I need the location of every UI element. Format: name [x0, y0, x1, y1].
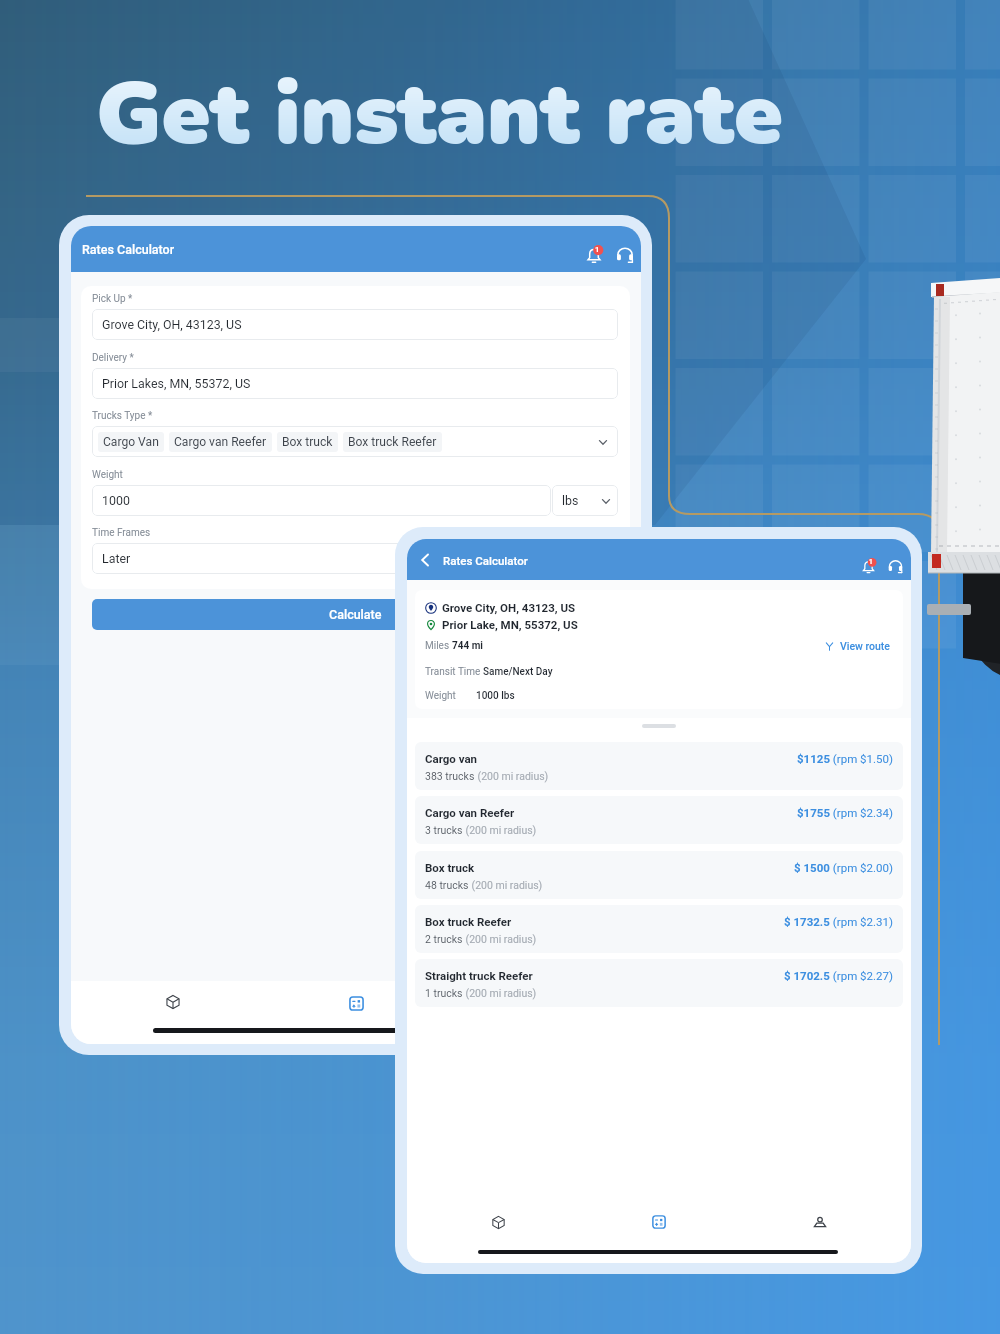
staticText: Trucks Type *	[92, 410, 153, 422]
staticText: Prior Lake, MN, 55372, US	[442, 618, 578, 631]
button[interactable]: 1000	[92, 485, 551, 516]
button[interactable]: Loads	[162, 991, 184, 1013]
button[interactable]: Calculator	[648, 1211, 670, 1233]
staticText: (200 mi radius)	[463, 824, 537, 836]
staticText: $1755	[797, 806, 830, 819]
staticText: (200 mi radius)	[463, 933, 537, 945]
staticText: Box truck	[425, 861, 475, 874]
staticText: Delivery *	[92, 352, 134, 364]
staticText: 383 trucks	[425, 770, 475, 782]
staticText: lbs	[562, 493, 579, 508]
staticText: Box truck Reefer	[348, 435, 437, 449]
staticText: Box truck Reefer	[425, 915, 512, 928]
button[interactable]: Notifications	[860, 558, 877, 575]
staticText: (200 mi radius)	[463, 987, 537, 999]
button[interactable]: Profile	[809, 1211, 831, 1233]
staticText: Weight	[92, 469, 123, 481]
button[interactable]: Notifications	[584, 245, 604, 265]
button[interactable]: Cargo van Reefer	[415, 796, 903, 844]
staticText: Calculate	[329, 607, 382, 622]
button[interactable]: Calculate	[92, 599, 619, 630]
button[interactable]: Cargo van	[415, 742, 903, 790]
staticText: 48 trucks	[425, 879, 469, 891]
button[interactable]: Straight truck Reefer	[415, 959, 903, 1007]
staticText: Time Frames	[92, 527, 151, 539]
staticText: 1 trucks	[425, 987, 463, 999]
staticText: Cargo Van	[103, 435, 159, 449]
staticText: Rates Calculator	[82, 242, 175, 257]
button[interactable]: Support	[615, 245, 635, 265]
staticText: Grove City, OH, 43123, US	[442, 601, 576, 614]
staticText: Box truck	[282, 435, 333, 449]
button[interactable]: Box truck Reefer	[415, 905, 903, 953]
staticText: (rpm $1.50)	[830, 752, 893, 765]
staticText: Same/Next Day	[483, 666, 553, 678]
button[interactable]: Grove City, OH, 43123, US	[92, 309, 618, 340]
staticText: (rpm $2.34)	[830, 806, 893, 819]
button[interactable]: Box truck	[415, 851, 903, 899]
staticText: View route	[840, 640, 890, 652]
staticText: 3 trucks	[425, 824, 463, 836]
staticText: 1	[595, 245, 600, 254]
staticText: Straight truck Reefer	[425, 969, 533, 982]
staticText: (rpm $2.31)	[830, 915, 893, 928]
button[interactable]: Cargo Van	[92, 426, 618, 457]
staticText: 1000	[102, 493, 130, 508]
staticText: $ 1732.5	[784, 915, 830, 928]
button[interactable]: Profile	[527, 992, 549, 1014]
staticText: $ 1500	[794, 861, 830, 874]
staticText: Grove City, OH, 43123, US	[102, 317, 242, 332]
staticText: Pick Up *	[92, 293, 133, 305]
staticText: 1	[869, 558, 873, 566]
staticText: Rates Calculator	[443, 554, 528, 567]
staticText: (200 mi radius)	[475, 770, 549, 782]
button[interactable]: Back	[415, 550, 435, 570]
staticText: Prior Lakes, MN, 55372, US	[102, 376, 251, 391]
staticText: Cargo van Reefer	[425, 806, 515, 819]
staticText: 2 trucks	[425, 933, 463, 945]
staticText: Transit Time	[425, 666, 483, 678]
button[interactable]: Loads	[487, 1211, 509, 1233]
staticText: Later	[102, 551, 131, 566]
staticText: $ 1702.5	[784, 969, 830, 982]
button[interactable]: View route	[824, 640, 890, 652]
button[interactable]: lbs	[552, 485, 618, 516]
button[interactable]: Support	[887, 558, 904, 575]
staticText: (rpm $2.00)	[830, 861, 893, 874]
staticText: 1000 lbs	[476, 690, 515, 702]
staticText: Miles	[425, 640, 452, 652]
staticText: Cargo van	[425, 752, 478, 765]
button[interactable]: Later	[92, 543, 618, 574]
staticText: Cargo van Reefer	[174, 435, 267, 449]
staticText: (rpm $2.27)	[830, 969, 893, 982]
staticText: (200 mi radius)	[469, 879, 543, 891]
staticText: Weight	[425, 690, 456, 702]
button[interactable]: Calculator	[345, 992, 367, 1014]
button[interactable]: Prior Lakes, MN, 55372, US	[92, 368, 618, 399]
staticText: 744 mi	[452, 640, 484, 652]
staticText: $1125	[797, 752, 830, 765]
staticText: Get instant rate	[96, 55, 783, 174]
